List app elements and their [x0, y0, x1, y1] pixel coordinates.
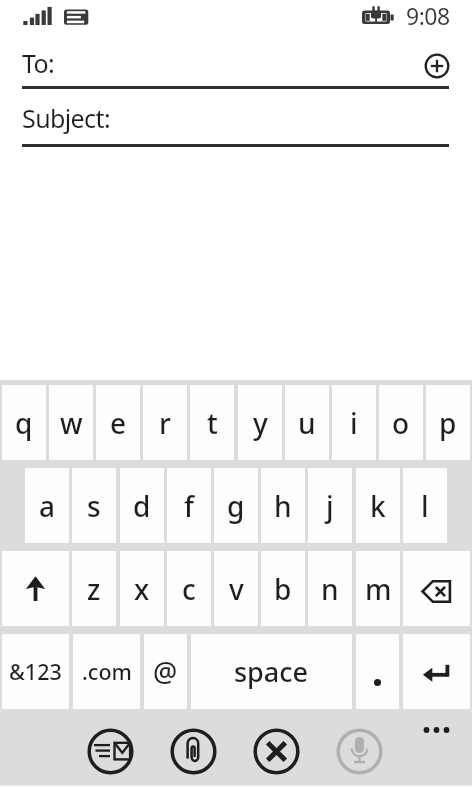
button[interactable]: To: — [0, 44, 472, 91]
staticText: s — [87, 487, 101, 525]
button[interactable]: c — [167, 551, 211, 626]
button[interactable]: d — [120, 468, 164, 543]
button[interactable] — [422, 50, 452, 80]
button[interactable]: a — [25, 468, 69, 543]
staticText: To: — [22, 46, 55, 80]
button[interactable] — [2, 551, 69, 626]
staticText: o — [392, 404, 410, 442]
button[interactable] — [356, 634, 399, 709]
button[interactable]: &123 — [2, 634, 69, 709]
button[interactable]: @ — [144, 634, 187, 709]
staticText: x — [134, 570, 150, 608]
staticText: d — [133, 487, 151, 525]
staticText: q — [15, 404, 33, 442]
button[interactable]: Subject: — [0, 100, 472, 149]
button[interactable]: v — [214, 551, 258, 626]
staticText: m — [365, 570, 392, 608]
button[interactable]: o — [379, 385, 423, 460]
staticText: v — [229, 570, 244, 608]
staticText: .com — [82, 657, 132, 686]
staticText: n — [321, 570, 339, 608]
staticText: b — [274, 570, 292, 608]
button[interactable]: m — [356, 551, 400, 626]
staticText: @ — [153, 653, 178, 690]
button[interactable]: u — [285, 385, 329, 460]
button[interactable]: q — [2, 385, 46, 460]
button[interactable]: n — [308, 551, 352, 626]
staticText: r — [159, 404, 171, 442]
button[interactable]: b — [261, 551, 305, 626]
staticText: e — [110, 404, 127, 442]
button[interactable]: p — [426, 385, 470, 460]
button[interactable]: e — [96, 385, 140, 460]
staticText: &123 — [9, 657, 62, 686]
button[interactable] — [253, 728, 300, 775]
button[interactable]: j — [308, 468, 352, 543]
button[interactable] — [418, 720, 456, 740]
staticText: c — [182, 570, 196, 608]
button[interactable]: z — [72, 551, 116, 626]
button[interactable] — [170, 728, 217, 775]
button[interactable]: x — [120, 551, 164, 626]
button[interactable]: s — [72, 468, 116, 543]
button[interactable]: h — [261, 468, 305, 543]
staticText: Subject: — [22, 101, 111, 135]
button[interactable]: t — [190, 385, 234, 460]
staticText: u — [298, 404, 316, 442]
staticText: f — [184, 487, 194, 525]
button[interactable]: space — [191, 634, 352, 709]
staticText: h — [274, 487, 292, 525]
button[interactable]: k — [356, 468, 400, 543]
button[interactable] — [403, 551, 470, 626]
staticText: i — [350, 404, 358, 442]
button[interactable]: i — [332, 385, 376, 460]
staticText: 9:08 — [406, 0, 450, 31]
button[interactable]: y — [238, 385, 282, 460]
staticText: space — [234, 653, 309, 690]
button[interactable] — [403, 634, 470, 709]
staticText: t — [207, 404, 218, 442]
staticText: j — [326, 487, 334, 525]
staticText: l — [421, 487, 429, 525]
button[interactable] — [87, 728, 134, 775]
button[interactable]: .com — [73, 634, 140, 709]
staticText: z — [87, 570, 101, 608]
staticText: k — [370, 487, 386, 525]
staticText: w — [60, 404, 83, 442]
staticText: p — [439, 404, 457, 442]
button[interactable] — [336, 728, 383, 775]
staticText: g — [227, 487, 245, 525]
staticText: y — [253, 404, 268, 442]
staticText: a — [39, 487, 56, 525]
button[interactable]: l — [403, 468, 447, 543]
button[interactable]: f — [167, 468, 211, 543]
button[interactable]: r — [143, 385, 187, 460]
button[interactable]: w — [49, 385, 93, 460]
button[interactable]: g — [214, 468, 258, 543]
